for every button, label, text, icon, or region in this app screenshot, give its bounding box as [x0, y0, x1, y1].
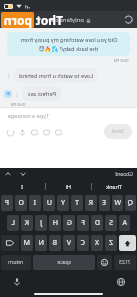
button[interactable]: Perfect ass [22, 86, 61, 101]
staticText: R [88, 198, 93, 208]
button[interactable]: Thank [92, 180, 137, 193]
staticText: return [8, 259, 23, 266]
button[interactable]: U [43, 195, 55, 211]
button[interactable]: ⋮ [14, 90, 20, 97]
staticText: D [94, 218, 100, 228]
button[interactable]: Backspace [1, 235, 19, 251]
staticText: Thot [35, 12, 63, 28]
button[interactable]: Z [105, 235, 117, 251]
staticText: I [33, 198, 36, 208]
staticText: G [66, 218, 72, 228]
button[interactable]: V [63, 235, 75, 251]
staticText: the back baby? 💦🔥😈 [38, 45, 98, 52]
staticText: O [18, 198, 24, 208]
button[interactable]: I [0, 180, 45, 193]
button[interactable]: ⋮ [6, 72, 12, 79]
button[interactable]: G [63, 215, 75, 231]
staticText: Y [61, 198, 65, 208]
button[interactable]: P [1, 195, 13, 211]
staticText: Type a message [7, 112, 49, 119]
button[interactable]: J [35, 215, 47, 231]
staticText: Thank [106, 183, 122, 190]
button[interactable]: Love to watch u from behind [14, 68, 98, 83]
button[interactable]: Gif [53, 126, 65, 138]
button[interactable]: Voice [17, 126, 29, 138]
button[interactable]: Reload [122, 13, 135, 26]
staticText: W [114, 198, 121, 208]
button[interactable]: Gallery [29, 126, 41, 138]
button[interactable]: Camera [41, 126, 53, 138]
button[interactable]: Space [33, 255, 95, 270]
button[interactable]: C [77, 235, 89, 251]
button[interactable]: Send [104, 124, 132, 139]
staticText: X [94, 238, 99, 248]
button[interactable]: I [29, 195, 41, 211]
button[interactable]: Attach [5, 126, 17, 138]
staticText: space [57, 259, 71, 266]
staticText: B [52, 238, 57, 248]
button[interactable]: A [119, 215, 130, 231]
button[interactable]: Did you love watching my pussy from [7, 32, 130, 56]
staticText: S [109, 218, 113, 228]
button[interactable]: Type a message [7, 108, 130, 122]
staticText: I [21, 183, 23, 190]
staticText: Send [112, 128, 124, 135]
staticText: C [80, 238, 85, 248]
staticText: T [75, 198, 79, 208]
staticText: onlyfans.com [46, 16, 84, 24]
staticText: Hi [65, 183, 71, 190]
staticText: M [23, 238, 30, 248]
button[interactable]: B [49, 235, 61, 251]
staticText: N [38, 238, 44, 248]
button[interactable]: ?123 [114, 255, 136, 270]
staticText: F [81, 218, 85, 228]
button[interactable]: Hi [46, 180, 91, 193]
button[interactable]: Voice input [11, 275, 24, 288]
staticText: Perfect ass [27, 90, 56, 97]
button[interactable]: D [91, 215, 103, 231]
button[interactable]: L [7, 215, 19, 231]
staticText: Did you love watching my pussy from [20, 36, 117, 43]
button[interactable]: F [77, 215, 89, 231]
staticText: J [40, 218, 42, 228]
button[interactable]: O [15, 195, 27, 211]
staticText: Gboard [115, 171, 133, 178]
button[interactable]: W [112, 195, 123, 211]
staticText: ?123 [119, 259, 130, 266]
button[interactable]: N [35, 235, 47, 251]
button[interactable]: return [1, 255, 31, 270]
staticText: U [46, 198, 52, 208]
staticText: 10:41 PM [113, 58, 129, 63]
button[interactable]: M [21, 235, 33, 251]
staticText: V [66, 238, 71, 248]
staticText: JM [6, 92, 10, 96]
staticText: A [122, 218, 127, 228]
staticText: H [52, 218, 58, 228]
button[interactable]: Collapse [18, 169, 28, 179]
button[interactable]: K [21, 215, 33, 231]
button[interactable]: ⋮ [3, 16, 10, 24]
staticText: Love to watch u from behind [19, 72, 93, 79]
staticText: E [102, 198, 106, 208]
staticText: L [11, 218, 15, 228]
button[interactable]: R [85, 195, 97, 211]
staticText: Z [108, 238, 113, 248]
button[interactable]: Q [125, 195, 136, 211]
button[interactable]: E [99, 195, 110, 211]
button[interactable]: Expand [3, 169, 13, 179]
button[interactable]: S [105, 215, 117, 231]
button[interactable]: H [49, 215, 61, 231]
button[interactable]: Emoji [97, 255, 112, 270]
button[interactable]: Y [57, 195, 69, 211]
staticText: P [4, 198, 9, 208]
button[interactable]: X [91, 235, 103, 251]
staticText: porn [3, 12, 32, 28]
button[interactable]: Change language [115, 275, 128, 288]
button[interactable]: T [71, 195, 83, 211]
button[interactable]: Shift [119, 235, 136, 251]
staticText: 10:43 PM [10, 102, 26, 107]
staticText: K [24, 218, 29, 228]
staticText: Q [127, 198, 133, 208]
